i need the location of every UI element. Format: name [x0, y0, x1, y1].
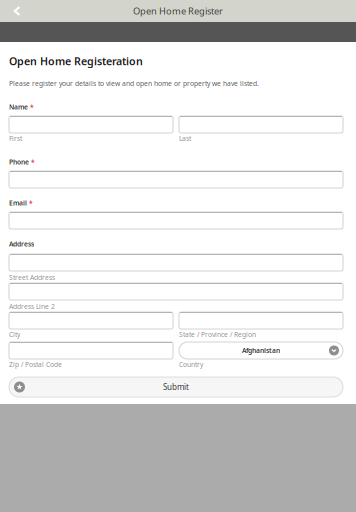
staticText: Email	[9, 199, 27, 207]
button[interactable]: Afghanistan	[179, 342, 343, 359]
staticText: Phone	[9, 158, 29, 166]
staticText: City	[9, 330, 20, 339]
staticText: *	[30, 103, 34, 111]
button[interactable]: Back	[0, 0, 34, 22]
staticText: First	[9, 134, 22, 143]
staticText: Submit	[163, 382, 189, 392]
staticText: Last	[179, 134, 191, 143]
staticText: Address Line 2	[9, 302, 55, 311]
staticText: Afghanistan	[242, 346, 280, 355]
staticText: State / Province / Region	[179, 330, 256, 339]
staticText: *	[29, 199, 33, 207]
staticText: Country	[179, 360, 203, 369]
staticText: Please register your details to view and…	[9, 79, 259, 88]
staticText: Street Address	[9, 273, 55, 282]
button[interactable]: Submit	[9, 377, 343, 397]
staticText: Open Home Registeration	[9, 54, 143, 68]
staticText: Name	[9, 103, 28, 111]
staticText: *	[31, 158, 35, 166]
staticText: Address	[9, 240, 34, 248]
staticText: Open Home Register	[133, 5, 223, 17]
staticText: Zip / Postal Code	[9, 360, 62, 369]
